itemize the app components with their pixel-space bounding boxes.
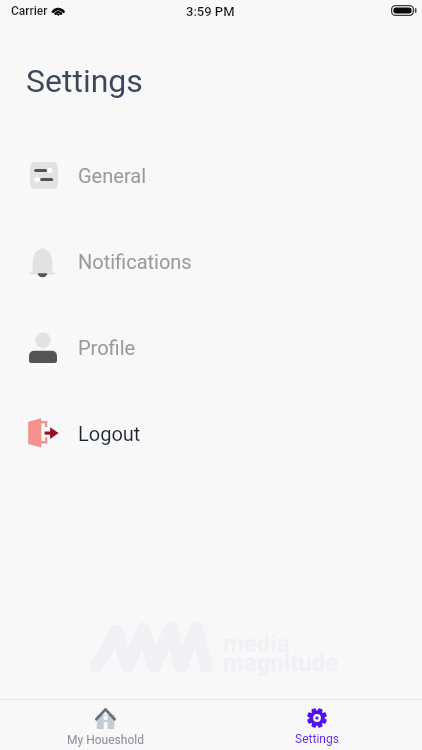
button[interactable]: Settings xyxy=(211,700,422,750)
staticText: General xyxy=(78,164,147,187)
button[interactable]: Logout xyxy=(0,390,422,476)
staticText: Logout xyxy=(78,422,141,445)
staticText: Notifications xyxy=(78,250,192,273)
button[interactable]: General xyxy=(0,132,422,218)
staticText: Settings xyxy=(26,62,143,100)
button[interactable]: Profile xyxy=(0,304,422,390)
staticText: media xyxy=(223,630,290,658)
staticText: My Houeshold xyxy=(67,733,144,747)
staticText: magnitude xyxy=(223,649,339,677)
staticText: Carrier xyxy=(11,4,48,18)
staticText: Settings xyxy=(295,732,339,746)
staticText: 3:59 PM xyxy=(186,4,235,19)
staticText: Profile xyxy=(78,336,136,359)
button[interactable]: My Houeshold xyxy=(0,700,211,750)
button[interactable]: Notifications xyxy=(0,218,422,304)
